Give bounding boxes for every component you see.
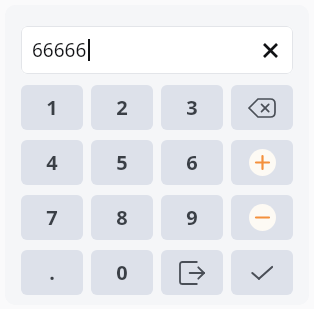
button[interactable]: 66666 [21, 26, 293, 74]
button[interactable]: Clear [257, 37, 283, 63]
staticText: 3 [186, 94, 198, 121]
staticText: 6 [186, 149, 198, 176]
staticText: 8 [116, 204, 128, 231]
button[interactable]: 1 [21, 85, 83, 130]
staticText: 4 [46, 149, 58, 176]
button[interactable]: 9 [161, 195, 223, 240]
button[interactable]: 0 [91, 250, 153, 295]
staticText: 5 [116, 149, 128, 176]
button[interactable]: 8 [91, 195, 153, 240]
staticText: 1 [46, 94, 58, 121]
button[interactable]: Confirm [231, 250, 293, 295]
button[interactable]: Subtract [231, 195, 293, 240]
staticText: 9 [186, 204, 198, 231]
staticText: 0 [116, 259, 128, 286]
button[interactable]: . [21, 250, 83, 295]
staticText: . [49, 259, 55, 286]
button[interactable]: 2 [91, 85, 153, 130]
button[interactable]: 5 [91, 140, 153, 185]
staticText: 7 [46, 204, 58, 231]
staticText: 66666 [32, 37, 87, 63]
button[interactable]: 6 [161, 140, 223, 185]
button[interactable]: 4 [21, 140, 83, 185]
button[interactable]: 7 [21, 195, 83, 240]
button[interactable]: Exit [161, 250, 223, 295]
button[interactable]: 3 [161, 85, 223, 130]
button[interactable]: Backspace [231, 85, 293, 130]
button[interactable]: Add [231, 140, 293, 185]
staticText: 2 [116, 94, 128, 121]
